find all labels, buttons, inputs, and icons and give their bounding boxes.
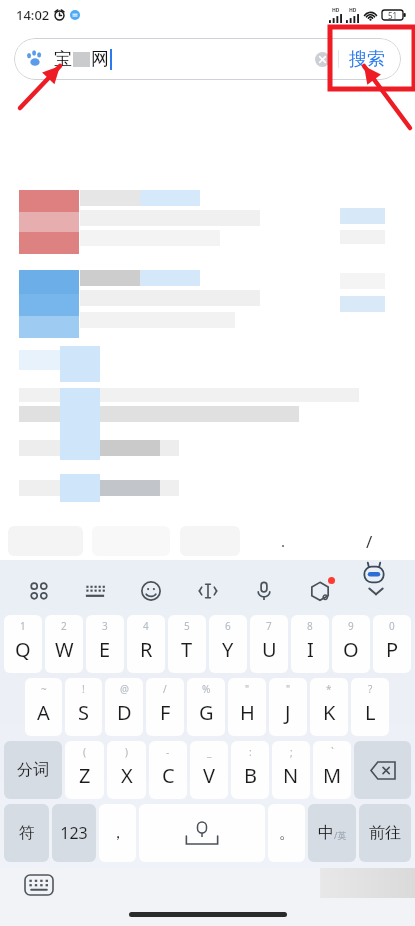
staticText: 分词 <box>17 760 49 780</box>
button[interactable]: ( <box>65 741 104 799</box>
staticText: ` <box>331 745 334 759</box>
staticText: _ <box>207 745 212 759</box>
button[interactable]: - <box>149 741 187 799</box>
staticText: 2 <box>61 619 67 633</box>
staticText: B <box>244 762 257 789</box>
staticText: ? <box>368 682 373 696</box>
staticText: 1 <box>20 619 26 633</box>
staticText: S <box>78 699 89 726</box>
staticText: ( <box>83 745 86 759</box>
staticText: 中 <box>318 823 334 843</box>
button[interactable]: 。 <box>268 804 305 862</box>
button[interactable]: % <box>187 678 225 736</box>
button[interactable]: 符 <box>4 804 49 862</box>
button[interactable]: Backspace <box>354 741 411 799</box>
staticText: ) <box>125 745 128 759</box>
staticText: Z <box>79 762 91 789</box>
button[interactable]: Hide keyboard <box>359 574 393 608</box>
button[interactable]: Assistant <box>361 561 387 587</box>
staticText: V <box>203 762 215 789</box>
button[interactable]: 中 <box>308 804 356 862</box>
staticText: 搜索 <box>349 48 385 71</box>
staticText: 4 <box>143 619 149 633</box>
button[interactable]: / <box>329 525 409 557</box>
staticText: 14:02 <box>16 6 50 24</box>
staticText: Y <box>222 636 234 663</box>
button[interactable]: : <box>231 741 269 799</box>
button[interactable]: Clear <box>312 49 332 69</box>
staticText: ， <box>110 823 126 843</box>
staticText: - <box>166 745 170 759</box>
button[interactable]: 123 <box>52 804 96 862</box>
staticText: C <box>162 762 175 789</box>
button[interactable]: 0 <box>373 615 411 673</box>
staticText: 8 <box>307 619 313 633</box>
staticText: 符 <box>19 823 35 843</box>
staticText: K <box>323 699 336 726</box>
staticText: X <box>121 762 133 789</box>
staticText: N <box>283 762 299 789</box>
button[interactable]: 4 <box>127 615 165 673</box>
staticText: " <box>245 682 250 696</box>
button[interactable]: 7 <box>250 615 288 673</box>
button[interactable]: ! <box>65 678 102 736</box>
button[interactable]: ， <box>99 804 136 862</box>
button[interactable]: / <box>146 678 184 736</box>
staticText: I <box>307 636 314 663</box>
button[interactable]: 分词 <box>4 741 62 799</box>
staticText: R <box>140 636 153 663</box>
staticText: H <box>240 699 255 726</box>
button[interactable]: Space <box>139 804 265 862</box>
button[interactable]: * <box>310 678 348 736</box>
staticText: 0 <box>389 619 395 633</box>
button[interactable]: Emoji <box>134 574 168 608</box>
staticText: 网 <box>91 48 109 71</box>
staticText: /英 <box>334 829 347 841</box>
staticText: / <box>163 682 167 696</box>
staticText: / <box>366 530 373 553</box>
button[interactable]: Switch keyboard <box>24 874 54 896</box>
staticText: 宝 <box>54 48 72 71</box>
button[interactable]: ) <box>107 741 146 799</box>
button[interactable]: " <box>228 678 266 736</box>
staticText: 51 <box>388 10 398 21</box>
staticText: 6 <box>225 619 231 633</box>
button[interactable]: 9 <box>332 615 370 673</box>
button[interactable]: ` <box>313 741 351 799</box>
staticText: . <box>281 531 286 551</box>
staticText: W <box>55 636 74 663</box>
staticText: ! <box>82 682 85 696</box>
staticText: : <box>249 745 252 759</box>
staticText: U <box>262 636 277 663</box>
button[interactable]: 6 <box>209 615 247 673</box>
button[interactable]: ? <box>351 678 389 736</box>
button[interactable]: 2 <box>45 615 83 673</box>
button[interactable]: ; <box>272 741 310 799</box>
button[interactable]: Keyboard layout <box>78 574 112 608</box>
button[interactable]: @ <box>105 678 143 736</box>
staticText: D <box>117 699 132 726</box>
button[interactable]: _ <box>190 741 228 799</box>
button[interactable]: 宝 <box>14 38 401 80</box>
button[interactable]: AI <box>303 574 337 608</box>
button[interactable]: 1 <box>4 615 42 673</box>
staticText: P <box>386 636 399 663</box>
button[interactable]: Apps <box>22 574 56 608</box>
staticText: Q <box>15 636 31 663</box>
button[interactable]: ~ <box>25 678 62 736</box>
button[interactable]: " <box>269 678 307 736</box>
button[interactable]: 3 <box>86 615 124 673</box>
staticText: 3 <box>102 619 108 633</box>
button[interactable]: 前往 <box>359 804 411 862</box>
staticText: ~ <box>41 682 47 696</box>
staticText: T <box>181 636 193 663</box>
staticText: L <box>365 699 376 726</box>
staticText: M <box>323 762 342 789</box>
button[interactable]: 搜索 <box>349 48 385 71</box>
button[interactable]: . <box>243 525 323 557</box>
button[interactable]: Voice input <box>247 574 281 608</box>
button[interactable]: 8 <box>291 615 329 673</box>
staticText: HD <box>332 7 340 14</box>
button[interactable]: Edit text <box>191 574 225 608</box>
button[interactable]: 5 <box>168 615 206 673</box>
